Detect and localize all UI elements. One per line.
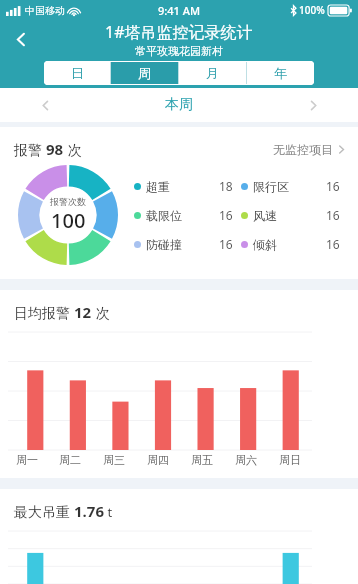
staticText: 常平玫瑰花园新村 — [135, 44, 223, 58]
staticText: 倾斜 — [253, 237, 277, 252]
staticText: 100% — [299, 3, 325, 17]
staticText: 超重 — [146, 179, 170, 194]
staticText: 1.76 — [74, 501, 104, 521]
staticText: 日均报警 — [14, 303, 74, 322]
button[interactable]: Back — [4, 22, 38, 56]
staticText: 无监控项目 — [273, 142, 333, 157]
staticText: 16 — [219, 207, 233, 223]
staticText: 9:41 AM — [158, 3, 201, 18]
staticText: 次 — [64, 140, 82, 159]
staticText: 防碰撞 — [146, 237, 182, 252]
staticText: 1#塔吊监控记录统计 — [105, 21, 253, 43]
staticText: 98 — [46, 139, 64, 159]
staticText: 本周 — [165, 96, 193, 114]
staticText: 报警次数 — [50, 196, 86, 207]
button[interactable]: 周 — [111, 61, 178, 85]
button[interactable]: Previous — [30, 90, 60, 120]
staticText: 周四 — [147, 453, 169, 467]
staticText: 最大吊重 — [14, 502, 74, 521]
button[interactable]: 日 — [44, 61, 110, 85]
staticText: 周五 — [191, 453, 213, 467]
staticText: 载限位 — [146, 208, 182, 223]
staticText: 16 — [326, 236, 340, 252]
staticText: 周一 — [16, 453, 38, 467]
staticText: 次 — [92, 303, 110, 322]
staticText: 中国移动 — [25, 4, 65, 17]
staticText: 限行区 — [253, 179, 289, 194]
staticText: 周三 — [103, 453, 125, 467]
staticText: 周六 — [235, 453, 257, 467]
button[interactable]: 月 — [179, 61, 246, 85]
staticText: t — [104, 503, 113, 521]
staticText: 报警 — [14, 140, 46, 159]
button[interactable]: 年 — [247, 61, 314, 85]
staticText: 周二 — [59, 453, 81, 467]
staticText: 周日 — [279, 453, 301, 467]
staticText: 16 — [219, 236, 233, 252]
staticText: 日 — [71, 65, 84, 81]
staticText: 16 — [326, 207, 340, 223]
staticText: 100 — [51, 207, 86, 234]
staticText: 12 — [74, 302, 92, 322]
staticText: 周 — [138, 65, 151, 81]
staticText: 风速 — [253, 208, 277, 223]
staticText: 18 — [219, 178, 233, 194]
button[interactable]: 无监控项目 — [273, 142, 346, 157]
button[interactable]: Next — [298, 90, 328, 120]
staticText: 年 — [274, 65, 287, 81]
staticText: 16 — [326, 178, 340, 194]
staticText: 月 — [206, 65, 219, 81]
